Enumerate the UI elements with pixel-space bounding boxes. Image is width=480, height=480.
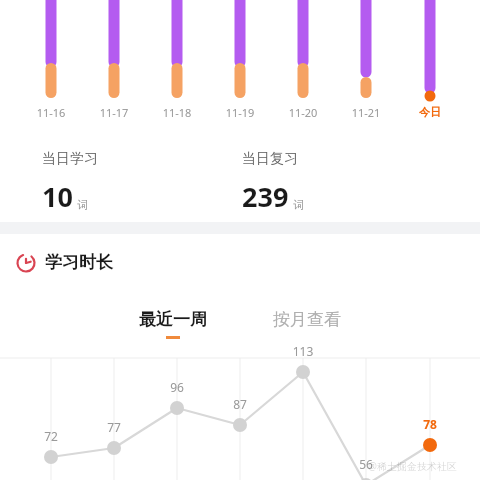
staticText: 11-17: [84, 105, 144, 120]
staticText: 学习时长: [45, 252, 113, 273]
other: Study duration: [16, 253, 36, 273]
staticText: 11-19: [210, 105, 270, 120]
staticText: 按月查看: [273, 309, 341, 330]
staticText: 11-21: [336, 105, 396, 120]
button[interactable]: Study duration: [16, 252, 113, 273]
staticText: 词: [293, 198, 304, 212]
staticText: 当日复习: [242, 150, 298, 168]
staticText: 当日学习: [42, 150, 98, 168]
button[interactable]: 最近一周: [125, 305, 221, 343]
staticText: 最近一周: [139, 309, 207, 330]
staticText: 11-20: [273, 105, 333, 120]
staticText: 72: [26, 428, 76, 444]
staticText: 239: [242, 178, 289, 215]
button[interactable]: 当日学习: [42, 150, 242, 215]
staticText: 87: [215, 396, 265, 412]
staticText: 113: [278, 343, 328, 359]
staticText: 56: [341, 456, 391, 472]
staticText: 77: [89, 419, 139, 435]
staticText: 78: [405, 416, 455, 432]
button[interactable]: 按月查看: [259, 305, 355, 343]
staticText: 11-18: [147, 105, 207, 120]
staticText: 今日: [400, 105, 460, 119]
staticText: 96: [152, 379, 202, 395]
button[interactable]: 当日复习: [242, 150, 480, 215]
staticText: @稀土掘金技术社区: [368, 459, 457, 473]
staticText: 10: [42, 178, 73, 215]
staticText: 词: [77, 198, 88, 212]
staticText: 11-16: [21, 105, 81, 120]
